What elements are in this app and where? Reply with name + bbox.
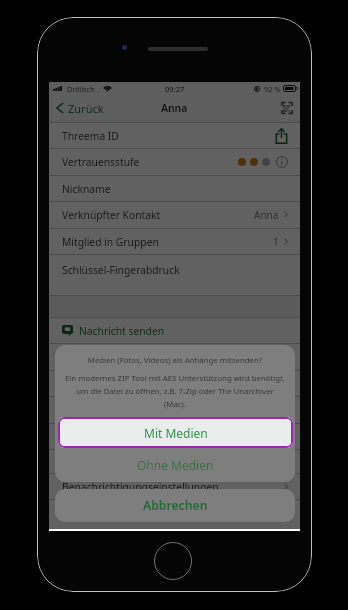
button[interactable]: Mitglied in Gruppen [49, 228, 300, 255]
staticText: Abbrechen [143, 497, 208, 514]
button[interactable]: Blockieren [49, 449, 300, 476]
staticText: Benachrichtigungseinstellungen [62, 480, 219, 494]
staticText: Vertrauensstufe [62, 155, 140, 169]
staticText: Nachricht senden [79, 324, 165, 338]
staticText: Zurück [68, 101, 104, 116]
staticText: Nickname [62, 182, 111, 196]
button[interactable]: Nickname [49, 175, 300, 202]
button[interactable]: Ohne Medien [55, 448, 295, 482]
button[interactable]: Vertrauensstufe [49, 148, 300, 175]
staticText: Schlüssel-Fingerabdruck [62, 263, 180, 277]
button[interactable]: Synchronisieren [49, 423, 300, 450]
staticText: 92 % [264, 84, 281, 94]
button[interactable]: Kontakt-Details [49, 370, 300, 397]
button[interactable]: Anruf starten [49, 396, 300, 423]
button[interactable]: Profilbild senden [49, 343, 300, 370]
button[interactable]: Schlüssel-Fingerabdruck [49, 254, 300, 295]
staticText: Anna [161, 101, 188, 115]
staticText: Mitglied in Gruppen [62, 235, 159, 249]
button[interactable]: Verknüpfter Kontakt [49, 201, 300, 228]
staticText: Ohne Medien [137, 457, 214, 473]
staticText: 1 [273, 235, 279, 249]
staticText: Ein modernes ZIP Tool mit AES Unterstütz… [53, 373, 297, 409]
button[interactable]: Info [276, 156, 288, 168]
button[interactable]: Benachrichtigungseinstellungen [49, 473, 300, 500]
button[interactable]: Zurück [54, 95, 106, 121]
button[interactable]: QR-Code scannen [279, 100, 295, 116]
staticText: Mit Medien [144, 425, 208, 441]
staticText: Anna [254, 208, 279, 222]
button[interactable]: Nachricht senden [49, 317, 300, 344]
staticText: Verknüpfter Kontakt [62, 208, 161, 222]
staticText: Medien (Fotos, Videos) als Anhänge mitse… [55, 355, 295, 366]
staticText: Threema ID [62, 129, 119, 143]
staticText: Profilbild senden [62, 350, 144, 364]
button[interactable]: Mit Medien [58, 417, 293, 448]
staticText: Drillisch [67, 84, 95, 94]
other: Home [154, 542, 192, 580]
staticText: 09:27 [165, 84, 185, 94]
button[interactable]: Abbrechen [55, 489, 295, 522]
staticText: Kontakt-Details [62, 377, 137, 391]
button[interactable]: Threema ID [49, 122, 300, 149]
